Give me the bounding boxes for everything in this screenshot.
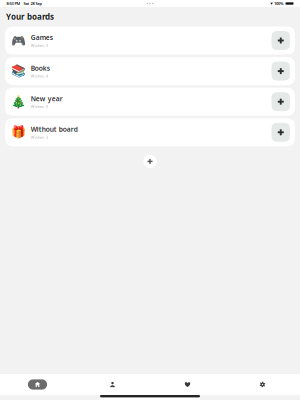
button[interactable]: Wishlist	[150, 374, 225, 395]
button[interactable]: Add to New year	[271, 92, 290, 111]
button[interactable]: 📚	[5, 57, 271, 85]
staticText: 🎁	[11, 125, 26, 139]
button[interactable]: Add to Games	[271, 31, 290, 50]
button[interactable]: 🎮	[5, 26, 271, 54]
button[interactable]: 🎄	[5, 88, 271, 116]
staticText: Your boards	[6, 11, 54, 22]
staticText: New year	[31, 94, 63, 103]
button[interactable]: Settings	[225, 374, 300, 395]
staticText: 🎮	[11, 34, 26, 47]
staticText: Wishes: 3	[31, 43, 48, 48]
button[interactable]: Home	[0, 374, 75, 395]
button[interactable]: Add to Books	[271, 62, 290, 81]
staticText: 🎄	[11, 95, 26, 108]
button[interactable]: New board	[143, 155, 157, 168]
staticText: Wishes: 4	[31, 73, 48, 79]
staticText: Games	[31, 33, 53, 42]
staticText: 📚	[11, 64, 26, 78]
button[interactable]: 🎁	[5, 118, 271, 146]
staticText: 100%	[274, 1, 284, 6]
staticText: Without board	[31, 125, 78, 134]
staticText: Wishes: 3	[31, 134, 48, 140]
staticText: Books	[31, 64, 50, 72]
staticText: Wishes: 5	[31, 104, 48, 109]
staticText: Sat 28 Sep	[23, 1, 42, 6]
staticText: 8:53 PM	[6, 1, 20, 6]
button[interactable]: Add to Without board	[271, 123, 290, 142]
button[interactable]: Friends	[75, 374, 150, 395]
